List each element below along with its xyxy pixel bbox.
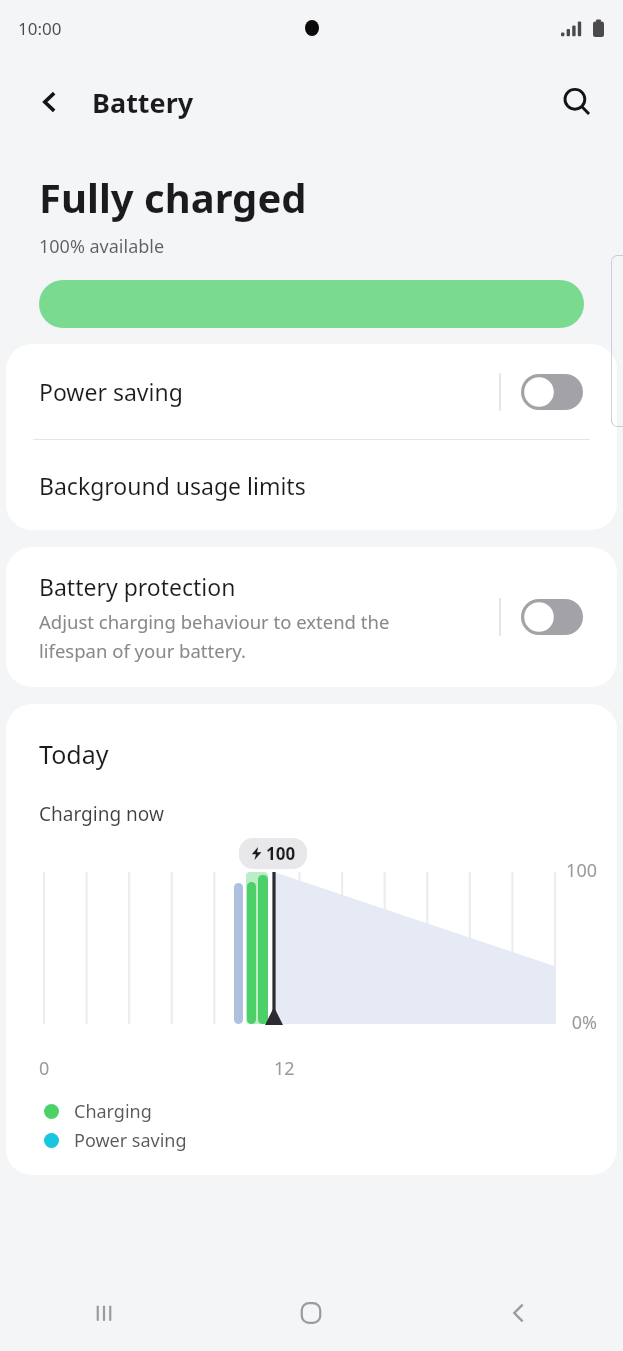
staticText: Fully charged <box>39 170 307 224</box>
button[interactable]: Home <box>207 1275 415 1351</box>
button[interactable]: Search <box>553 78 601 126</box>
staticText: 100 <box>266 842 296 865</box>
staticText: 100 <box>566 858 597 883</box>
staticText: 100% available <box>39 234 165 259</box>
staticText: 10:00 <box>18 17 62 40</box>
button[interactable]: Battery protection <box>6 547 617 687</box>
staticText: Charging <box>74 1099 152 1124</box>
staticText: 0 <box>39 1056 50 1081</box>
staticText: Power saving <box>39 376 499 407</box>
button[interactable]: Back <box>26 78 74 126</box>
staticText: Battery <box>92 84 194 121</box>
button[interactable]: Back <box>415 1275 623 1351</box>
staticText: 12 <box>274 1056 295 1081</box>
button[interactable]: Battery protection toggle <box>521 599 583 635</box>
staticText: Background usage limits <box>39 470 306 501</box>
button[interactable]: Power saving toggle <box>521 374 583 410</box>
staticText: Battery protection <box>39 571 236 602</box>
staticText: Today <box>39 737 109 771</box>
button[interactable]: Power saving <box>6 344 617 439</box>
staticText: Power saving <box>74 1128 187 1153</box>
button[interactable]: Recents <box>0 1275 207 1351</box>
button[interactable]: Background usage limits <box>6 440 617 530</box>
staticText: Charging now <box>39 801 164 827</box>
button[interactable]: Today <box>6 704 617 1175</box>
staticText: Adjust charging behaviour to extend the … <box>39 609 390 663</box>
staticText: 0% <box>571 1010 597 1035</box>
